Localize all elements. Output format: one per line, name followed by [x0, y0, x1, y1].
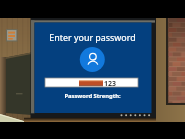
staticText: 123: [104, 79, 117, 89]
staticText: Enter your password: [34, 31, 151, 43]
staticText: Password Strength:: [34, 92, 151, 100]
